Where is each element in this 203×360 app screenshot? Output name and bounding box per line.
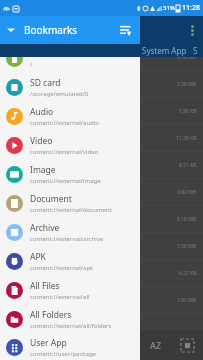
staticText: 7.28 MB: [177, 81, 197, 88]
staticText: 11.78 KB: [176, 135, 197, 142]
button[interactable]: APK: [0, 247, 140, 276]
staticText: Audio: [30, 106, 54, 118]
staticText: content://external/audio: [30, 119, 99, 127]
button[interactable]: Sort list: [112, 17, 138, 43]
button[interactable]: SD card: [0, 73, 140, 102]
staticText: SD: [193, 45, 203, 56]
button[interactable]: Audio: [0, 102, 140, 131]
button[interactable]: 9.82 MB: [0, 179, 203, 206]
staticText: 31%: [163, 4, 175, 12]
staticText: 9.82 MB: [177, 189, 197, 196]
button[interactable]: Image: [0, 160, 140, 189]
button[interactable]: AZ: [140, 330, 171, 360]
button[interactable]: All Files: [0, 276, 140, 305]
staticText: 4.18 MB: [177, 54, 197, 61]
staticText: content://external/all/folders: [30, 322, 112, 330]
staticText: /storage/emulated/0: [30, 90, 89, 98]
staticText: Image: [30, 164, 56, 176]
staticText: Document: [30, 193, 72, 205]
button[interactable]: Archive: [0, 218, 140, 247]
staticText: /: [30, 61, 33, 69]
staticText: All Files: [30, 280, 60, 292]
staticText: 7.95 MB: [177, 297, 197, 304]
button[interactable]: Root: [0, 44, 140, 73]
staticText: content://external/all: [30, 293, 90, 301]
button[interactable]: More options: [181, 19, 203, 41]
button[interactable]: Select: [171, 330, 203, 360]
staticText: content://user/package: [30, 350, 96, 358]
staticText: 8.71 KB: [179, 162, 197, 169]
staticText: Root: [30, 48, 49, 60]
staticText: User App: [30, 337, 67, 349]
staticText: APK: [30, 251, 46, 263]
staticText: 8.18 MB: [177, 216, 197, 223]
staticText: Archive: [30, 222, 60, 234]
button[interactable]: User App: [0, 334, 140, 360]
staticText: content://external/archive: [30, 235, 104, 243]
staticText: content://external/document: [30, 206, 112, 214]
button[interactable]: 7.95 MB: [0, 287, 203, 314]
staticText: System App: [142, 45, 187, 56]
button[interactable]: 7.28 MB: [0, 71, 203, 98]
staticText: content://external/image: [30, 177, 101, 185]
button[interactable]: Document: [0, 189, 140, 218]
staticText: SD card: [30, 77, 61, 89]
button[interactable]: 6.27 KB: [0, 260, 203, 287]
button[interactable]: 7.89 KB: [0, 98, 203, 125]
staticText: content://external/video: [30, 148, 99, 156]
button[interactable]: 11.78 KB: [0, 125, 203, 152]
button[interactable]: 8.71 KB: [0, 152, 203, 179]
button[interactable]: 4.18 MB: [0, 44, 203, 71]
button[interactable]: Expand: [0, 19, 22, 41]
staticText: Video: [30, 135, 53, 147]
button[interactable]: 7.56 MB: [0, 233, 203, 260]
staticText: AZ: [150, 339, 162, 351]
staticText: 7.89 KB: [179, 108, 197, 115]
staticText: 11:28: [182, 3, 200, 13]
staticText: All Folders: [30, 309, 72, 321]
staticText: Bookmarks: [24, 23, 78, 37]
staticText: 6.27 KB: [179, 270, 197, 277]
button[interactable]: All Folders: [0, 305, 140, 334]
button[interactable]: o_Me.mp3: [0, 206, 203, 233]
staticText: content://external/apk: [30, 264, 94, 272]
staticText: 7.56 MB: [177, 243, 197, 250]
button[interactable]: Video: [0, 131, 140, 160]
